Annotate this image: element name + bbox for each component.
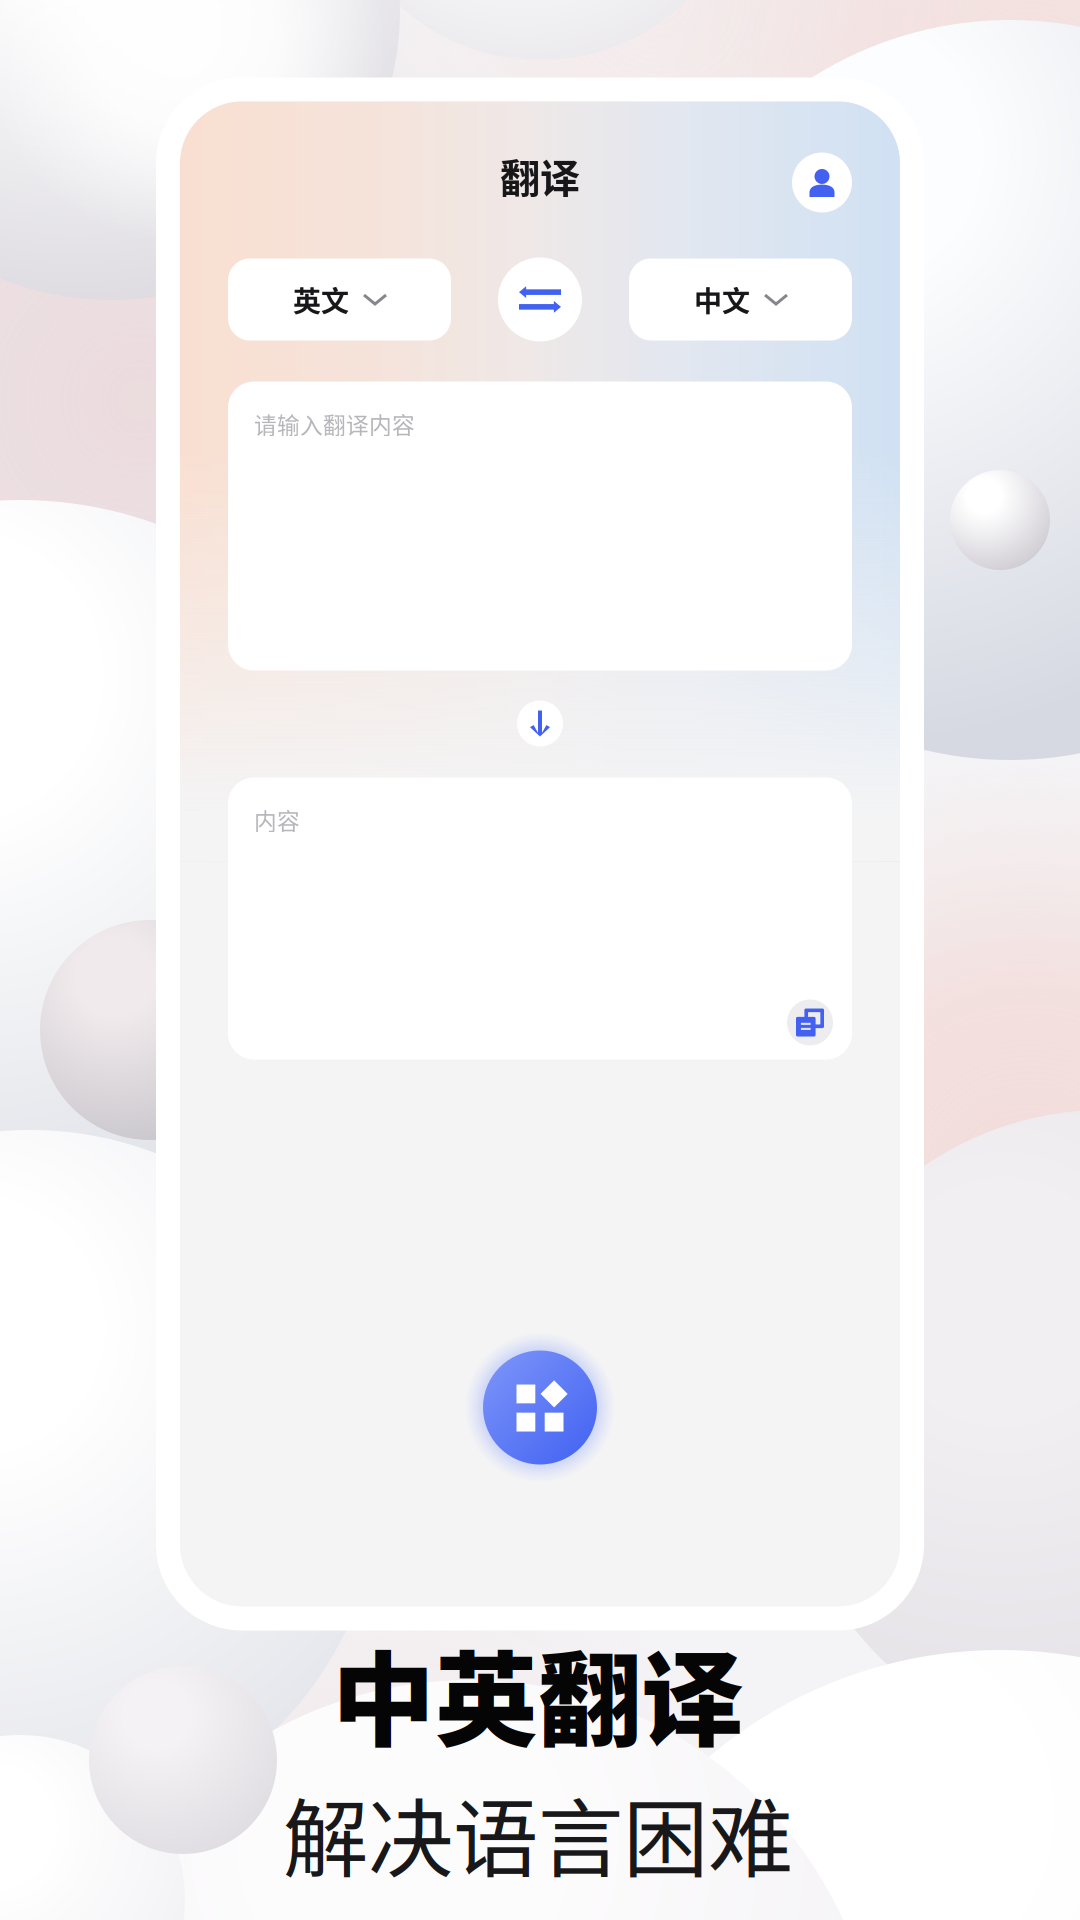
- button[interactable]: Profile: [792, 152, 852, 212]
- staticText: 请输入翻译内容: [254, 407, 415, 440]
- staticText: 中英翻译: [332, 1619, 744, 1767]
- button[interactable]: More tools: [465, 1332, 615, 1482]
- button[interactable]: 英文: [228, 258, 451, 340]
- staticText: 中文: [694, 279, 750, 320]
- staticText: 英文: [293, 279, 349, 320]
- staticText: 解决语言困难: [283, 1771, 793, 1895]
- button[interactable]: Copy: [787, 999, 833, 1045]
- button[interactable]: Translate: [517, 700, 563, 746]
- button[interactable]: Swap languages: [498, 257, 582, 341]
- staticText: 翻译: [500, 146, 580, 204]
- staticText: 内容: [254, 803, 300, 836]
- button[interactable]: 中文: [629, 258, 852, 340]
